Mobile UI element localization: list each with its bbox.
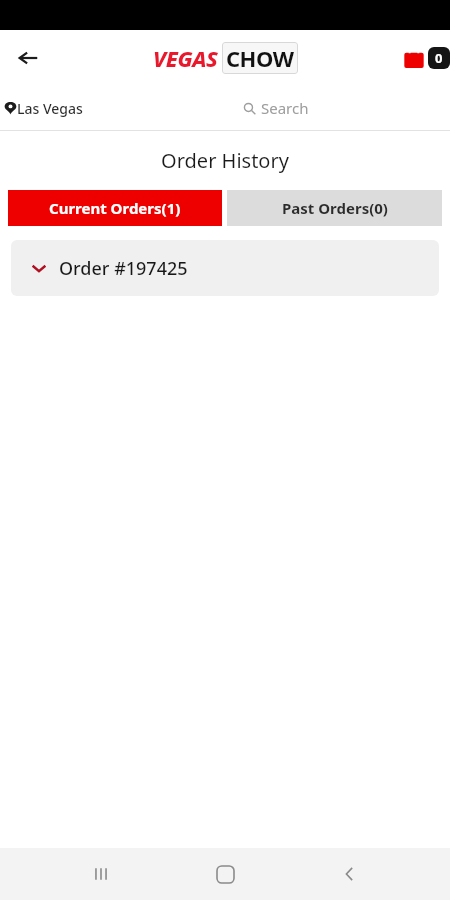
staticText: VEGAS: [153, 43, 218, 73]
button[interactable]: Back: [326, 850, 374, 898]
staticText: CHOW: [226, 43, 294, 73]
staticText: Current Orders(1): [49, 198, 181, 218]
button[interactable]: Current Orders(1): [8, 190, 222, 226]
button[interactable]: Home: [201, 850, 249, 898]
staticText: Order #197425: [59, 256, 188, 281]
staticText: Search: [261, 98, 309, 118]
button[interactable]: Back: [8, 38, 48, 78]
button[interactable]: Order #197425: [11, 240, 439, 296]
staticText: Las Vegas: [17, 99, 83, 118]
staticText: 0: [435, 49, 443, 67]
button[interactable]: Past Orders(0): [227, 190, 442, 226]
button[interactable]: Search: [243, 98, 309, 118]
staticText: Order History: [0, 147, 450, 174]
button[interactable]: Cart, 0 items: [403, 47, 450, 69]
button[interactable]: Las Vegas: [4, 99, 83, 118]
staticText: Past Orders(0): [282, 198, 388, 218]
button[interactable]: VEGAS: [153, 42, 298, 74]
button[interactable]: Recent apps: [77, 850, 125, 898]
